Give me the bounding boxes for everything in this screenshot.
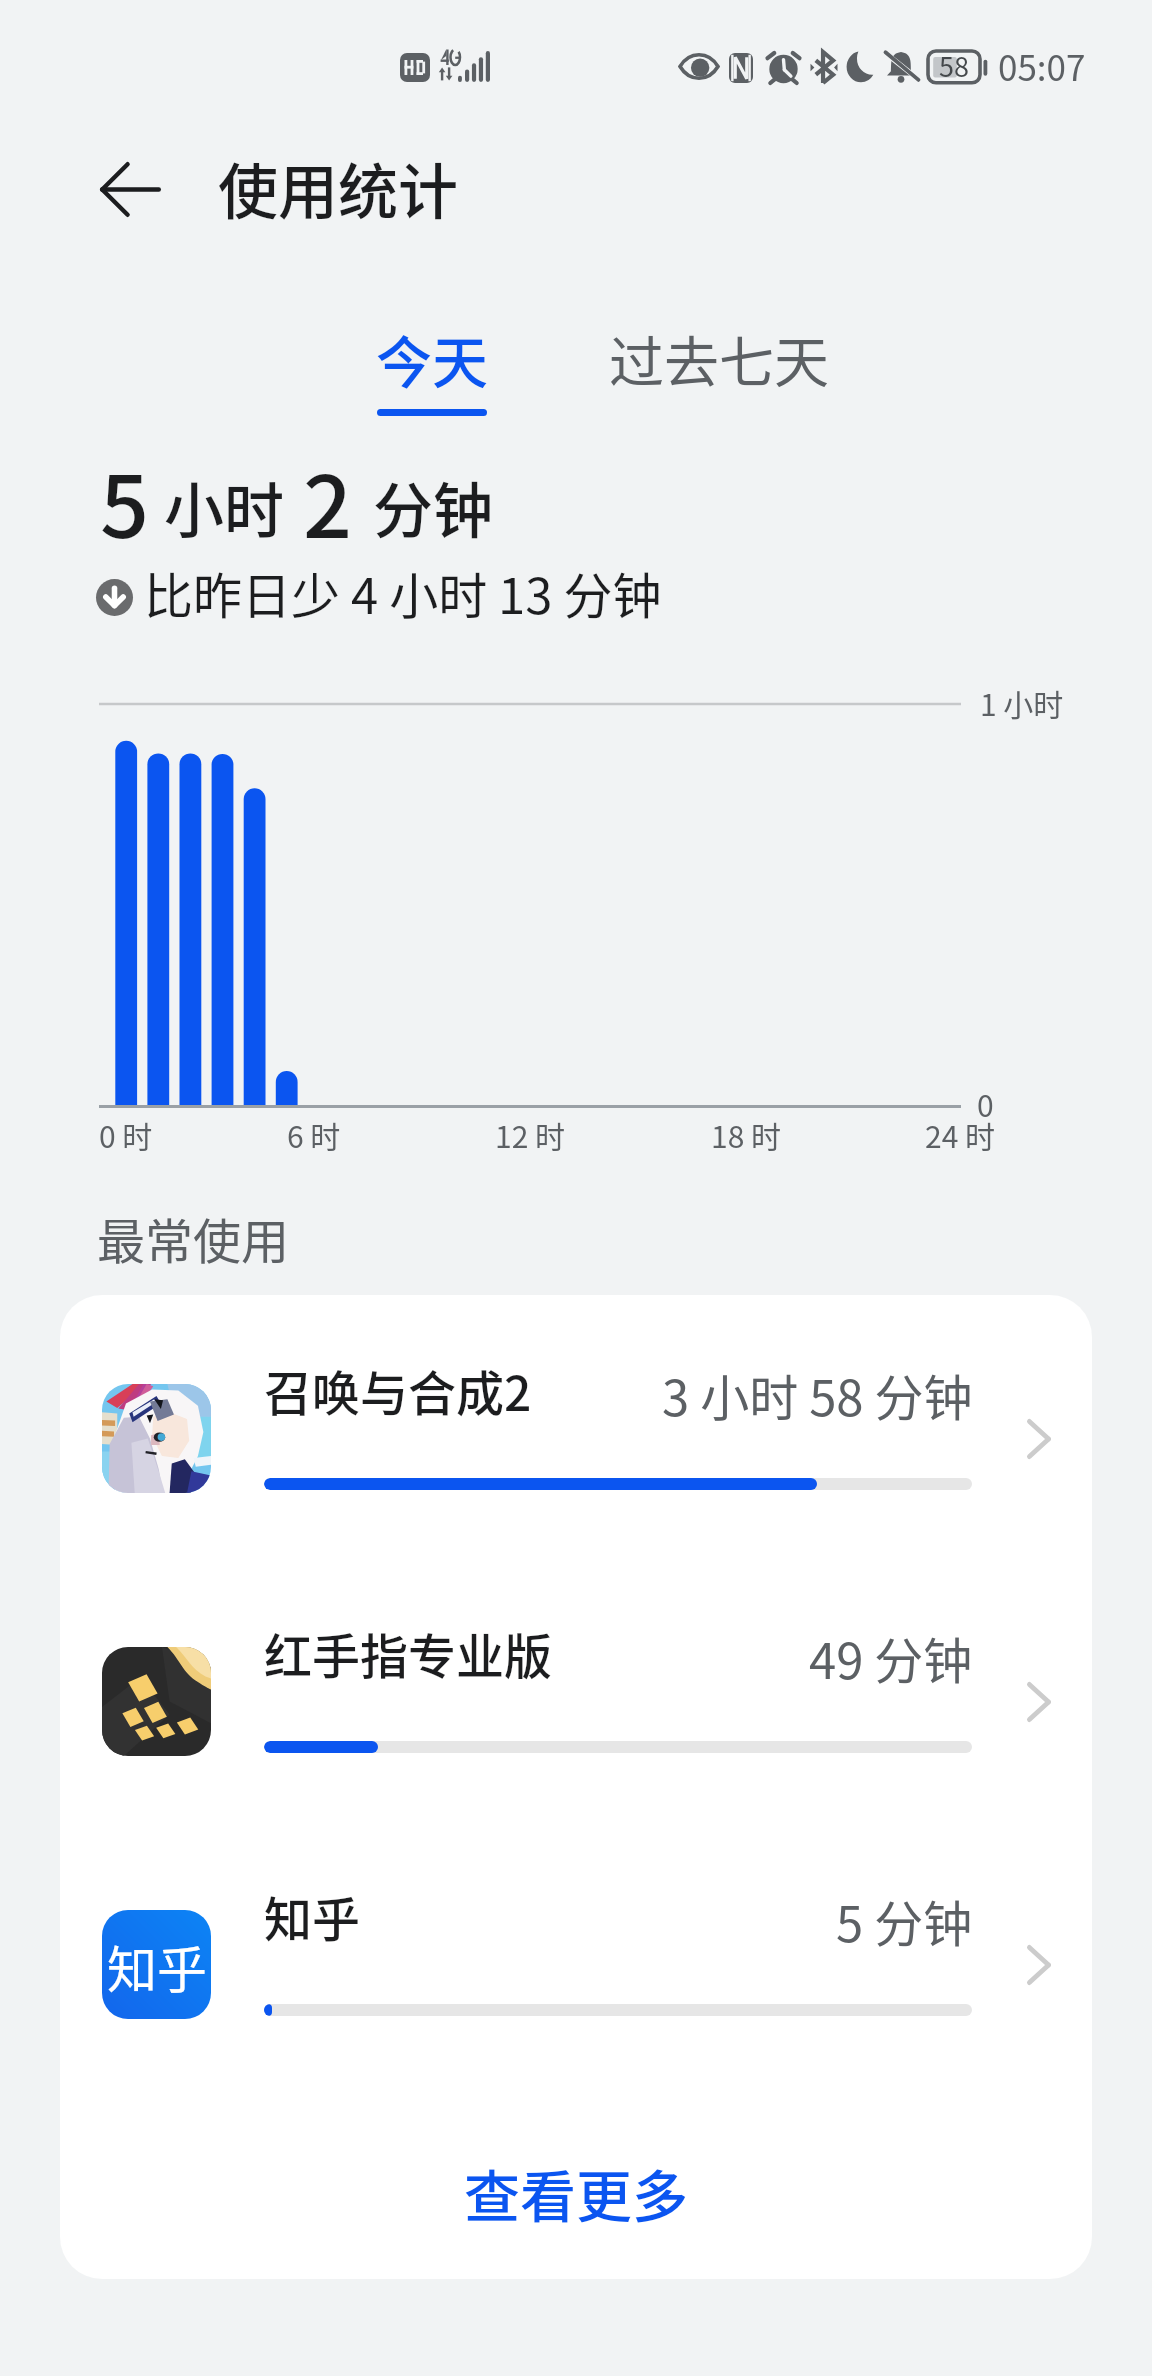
staticText: 05:07 (998, 40, 1086, 91)
button[interactable]: 过去七天 (589, 318, 849, 410)
staticText: 5 (100, 438, 150, 563)
staticText: 3 小时 58 分钟 (662, 1359, 973, 1430)
staticText: 过去七天 (609, 318, 830, 398)
staticText: 比昨日少 4 小时 13 分钟 (144, 557, 662, 628)
staticText: 49 分钟 (809, 1622, 973, 1693)
staticText: 5 分钟 (836, 1885, 973, 1956)
staticText: 最常使用 (97, 1203, 290, 1273)
button[interactable]: 查看更多 (60, 2115, 1092, 2265)
staticText: 今天 (376, 318, 488, 399)
staticText: 知乎 (107, 1930, 207, 2002)
staticText: 24 时 (925, 1113, 996, 1156)
staticText: 知乎 (264, 1881, 361, 1951)
staticText: 召唤与合成2 (264, 1355, 532, 1425)
staticText: 红手指专业版 (264, 1618, 553, 1688)
staticText: 使用统计 (218, 144, 458, 231)
staticText: 2 (303, 438, 353, 563)
staticText: 6 时 (287, 1113, 341, 1156)
button[interactable]: 今天 (350, 318, 514, 428)
button[interactable]: 知乎 (60, 1865, 1092, 2065)
staticText: 18 时 (711, 1113, 782, 1156)
staticText: 0 时 (99, 1113, 153, 1156)
staticText: 0 (977, 1082, 994, 1125)
staticText: 查看更多 (464, 2152, 688, 2233)
staticText: 12 时 (495, 1113, 566, 1156)
staticText: 1 小时 (980, 681, 1064, 724)
staticText: 58 (939, 46, 969, 85)
button[interactable]: 召唤与合成2 (60, 1339, 1092, 1539)
staticText: 小时 (164, 463, 284, 550)
button[interactable]: Back (72, 141, 192, 241)
button[interactable]: 红手指专业版 (60, 1602, 1092, 1802)
staticText: 分钟 (373, 463, 493, 550)
